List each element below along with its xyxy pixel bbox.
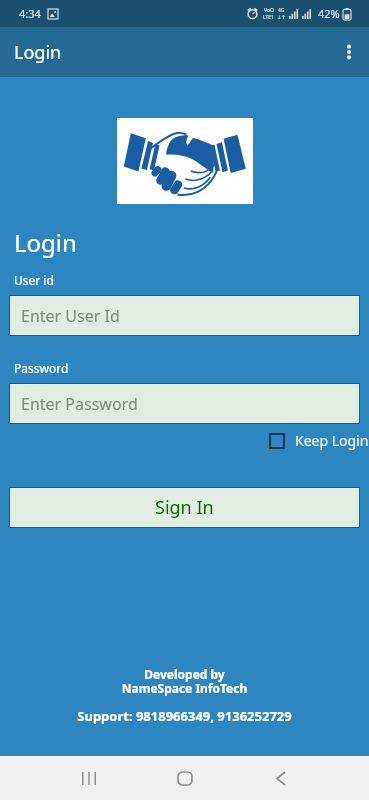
- staticText: Login: [14, 40, 62, 65]
- staticText: Enter User Id: [21, 305, 120, 327]
- staticText: Sign In: [155, 495, 214, 520]
- staticText: User id: [14, 272, 54, 288]
- button[interactable]: Keep Login: [269, 431, 369, 450]
- staticText: 42%: [318, 6, 340, 21]
- staticText: Password: [14, 360, 69, 376]
- staticText: 4:34: [19, 6, 41, 21]
- staticText: ↓↑: [277, 14, 286, 20]
- button[interactable]: Back: [261, 758, 301, 798]
- button[interactable]: More options: [329, 32, 369, 72]
- button[interactable]: Enter Password: [11, 385, 358, 422]
- staticText: Enter Password: [21, 393, 138, 415]
- staticText: Developed by NameSpace InfoTech: [0, 666, 369, 697]
- button[interactable]: Sign In: [11, 489, 358, 526]
- button[interactable]: Recents: [69, 758, 109, 798]
- button[interactable]: Enter User Id: [11, 297, 358, 334]
- staticText: Keep Login: [295, 431, 369, 450]
- staticText: VoO: [264, 7, 274, 14]
- button[interactable]: Home: [165, 758, 205, 798]
- staticText: 4G: [278, 7, 285, 14]
- staticText: LTE1: [263, 14, 274, 21]
- staticText: Login: [14, 226, 77, 259]
- staticText: Support: 9818966349, 9136252729: [0, 707, 369, 725]
